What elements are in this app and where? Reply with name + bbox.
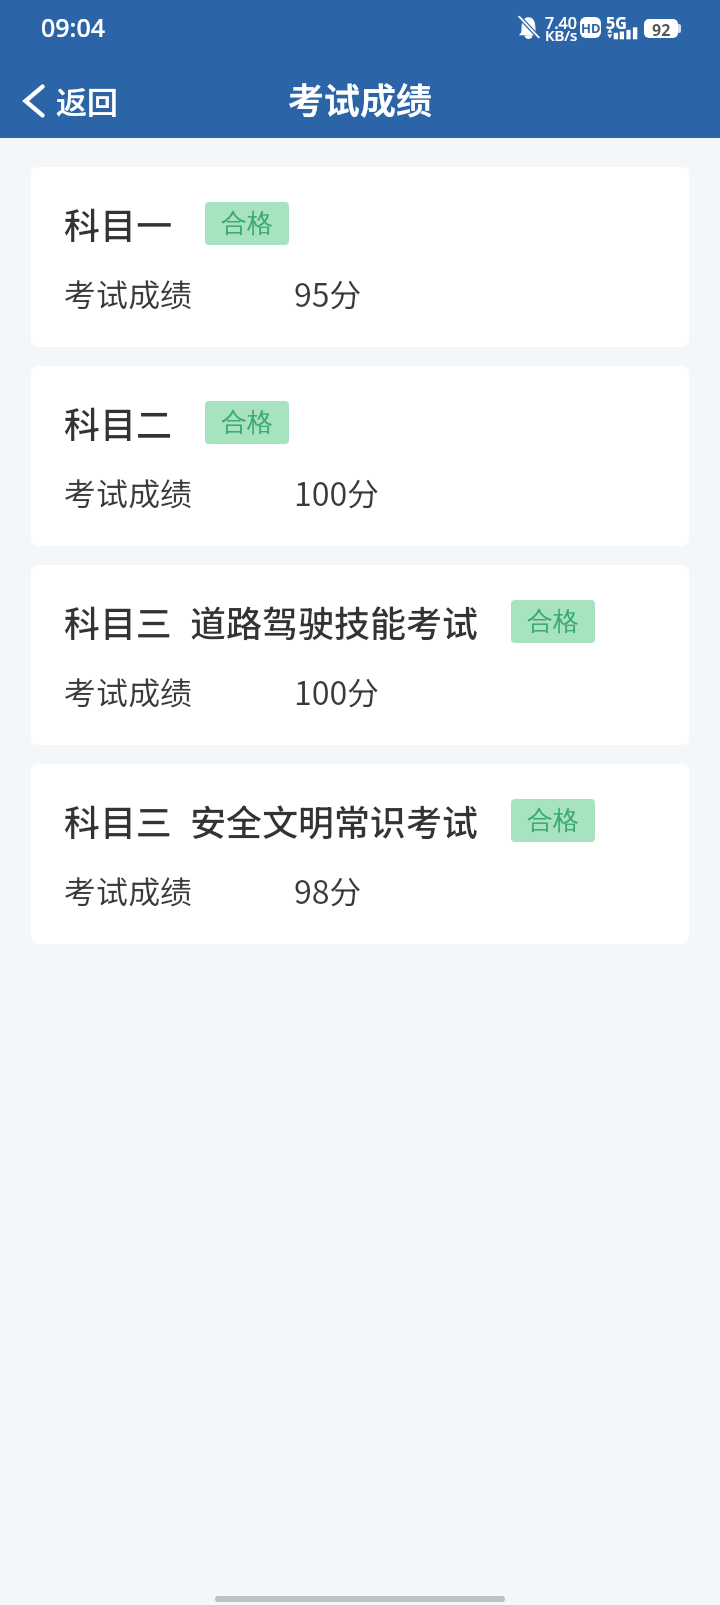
staticText: 98分 [294,867,362,913]
staticText: 科目二 [64,396,173,448]
staticText: 5G [606,12,627,34]
staticText: 合格 [221,207,273,240]
button[interactable]: 科目二 [31,366,689,546]
staticText: 合格 [221,406,273,439]
button[interactable]: 返回 [0,66,132,129]
staticText: 考试成绩 [64,668,193,714]
staticText: 考试成绩 [64,270,193,316]
staticText: 100分 [294,469,380,515]
staticText: 100分 [294,668,380,714]
staticText: 7.40 [545,12,577,34]
staticText: 返回 [56,78,118,123]
staticText: 科目三 [64,794,173,846]
staticText: 95分 [294,270,362,316]
staticText: 09:04 [41,10,106,44]
button[interactable]: 科目一 [31,167,689,347]
staticText: 考试成绩 [64,469,193,515]
staticText: 合格 [527,804,579,837]
staticText: 考试成绩 [64,867,193,913]
button[interactable]: 科目三 [31,565,689,745]
staticText: 道路驾驶技能考试 [190,595,479,647]
staticText: 科目一 [64,197,173,249]
button[interactable]: 科目三 [31,764,689,944]
staticText: HD [581,19,601,37]
staticText: 考试成绩 [288,72,433,124]
staticText: 92 [652,19,671,38]
staticText: 科目三 [64,595,173,647]
staticText: KB/s [545,25,578,45]
staticText: 安全文明常识考试 [190,794,479,846]
staticText: 合格 [527,605,579,638]
